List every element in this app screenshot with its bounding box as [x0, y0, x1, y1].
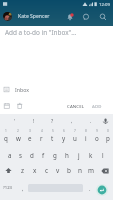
staticText: 1 [5, 129, 7, 133]
staticText: m [88, 166, 94, 175]
staticText: Inbox [15, 86, 29, 93]
staticText: y [62, 134, 66, 142]
button[interactable]: t [47, 128, 58, 145]
button[interactable]: c [41, 162, 52, 179]
button[interactable]: h [61, 145, 73, 162]
button[interactable]: Backspace [96, 162, 113, 179]
button[interactable]: u [69, 128, 80, 145]
staticText: o [95, 134, 99, 142]
button[interactable]: e [24, 128, 36, 145]
staticText: w [16, 134, 21, 142]
staticText: k [89, 151, 93, 159]
button[interactable]: ?123 [0, 179, 16, 197]
button[interactable]: v [52, 162, 63, 179]
button[interactable]: , [62, 114, 81, 128]
button[interactable]: y [58, 128, 69, 145]
button[interactable]: Shift [0, 162, 17, 179]
button[interactable]: p [102, 128, 113, 145]
button[interactable]: Profile [3, 12, 12, 21]
button[interactable]: i [80, 128, 91, 145]
button[interactable]: s [15, 145, 26, 162]
staticText: t [51, 134, 54, 142]
button[interactable]: Search [96, 10, 110, 24]
staticText: u [73, 134, 77, 142]
staticText: z [21, 166, 25, 175]
button[interactable]: w [12, 128, 24, 145]
staticText: , [71, 118, 73, 125]
staticText: x [33, 166, 37, 175]
staticText: 0 [107, 129, 109, 133]
staticText: l [102, 151, 104, 159]
staticText: n [78, 166, 82, 175]
staticText: Kate Spencer [18, 13, 50, 20]
button[interactable]: ‘ [4, 114, 24, 128]
button[interactable]: CANCEL [65, 100, 87, 112]
button[interactable]: Delete [15, 101, 25, 111]
button[interactable]: f [37, 145, 49, 162]
button[interactable]: Set date [2, 101, 12, 111]
button[interactable]: ADD [90, 100, 104, 112]
staticText: ! [33, 118, 35, 125]
button[interactable]: z [17, 162, 29, 179]
staticText: Add a to-do in "Inbox"... [5, 28, 77, 37]
staticText: ?123 [3, 185, 13, 191]
staticText: ? [51, 118, 54, 125]
staticText: 9 [96, 129, 98, 133]
button[interactable]: x [29, 162, 41, 179]
button[interactable]: , [17, 179, 28, 197]
staticText: h [65, 151, 69, 159]
staticText: b [67, 166, 71, 175]
staticText: c [45, 166, 49, 175]
button[interactable]: o [91, 128, 102, 145]
staticText: i [85, 134, 87, 142]
button[interactable]: l [97, 145, 109, 162]
button[interactable]: Enter [94, 182, 110, 198]
staticText: 5 [52, 129, 54, 133]
staticText: 2 [17, 129, 19, 133]
button[interactable]: Messages [79, 10, 93, 24]
staticText: r [40, 134, 43, 142]
button[interactable]: k [85, 145, 97, 162]
staticText: v [56, 166, 60, 175]
button[interactable]: Inbox [4, 82, 113, 96]
staticText: 12:09 [99, 1, 110, 7]
staticText: 6 [63, 129, 65, 133]
staticText: . [90, 118, 92, 125]
staticText: 8 [85, 129, 87, 133]
button[interactable]: d [26, 145, 37, 162]
staticText: s [19, 151, 22, 159]
staticText: e [28, 134, 32, 142]
button[interactable]: a [4, 145, 15, 162]
staticText: 3 [29, 129, 31, 133]
staticText: . [89, 185, 91, 192]
button[interactable]: j [73, 145, 85, 162]
button[interactable]: m [85, 162, 96, 179]
button[interactable]: Notifications [63, 10, 77, 24]
staticText: ‘ [14, 118, 15, 125]
staticText: , [22, 185, 24, 192]
staticText: f [42, 151, 45, 159]
button[interactable]: ! [24, 114, 43, 128]
button[interactable]: g [49, 145, 61, 162]
staticText: j [78, 151, 80, 159]
button[interactable]: n [74, 162, 85, 179]
staticText: 7 [74, 129, 76, 133]
staticText: q [4, 134, 8, 142]
staticText: CANCEL [67, 103, 85, 109]
button[interactable]: r [36, 128, 47, 145]
button[interactable]: Voice input [100, 114, 111, 128]
staticText: d [30, 151, 34, 159]
staticText: a [8, 151, 12, 159]
staticText: ADD [92, 103, 102, 109]
button[interactable]: b [63, 162, 74, 179]
staticText: g [53, 151, 57, 159]
button[interactable]: q [0, 128, 12, 145]
staticText: p [106, 134, 110, 142]
staticText: 4 [41, 129, 43, 133]
button[interactable]: ? [43, 114, 62, 128]
button[interactable]: . [84, 179, 95, 197]
